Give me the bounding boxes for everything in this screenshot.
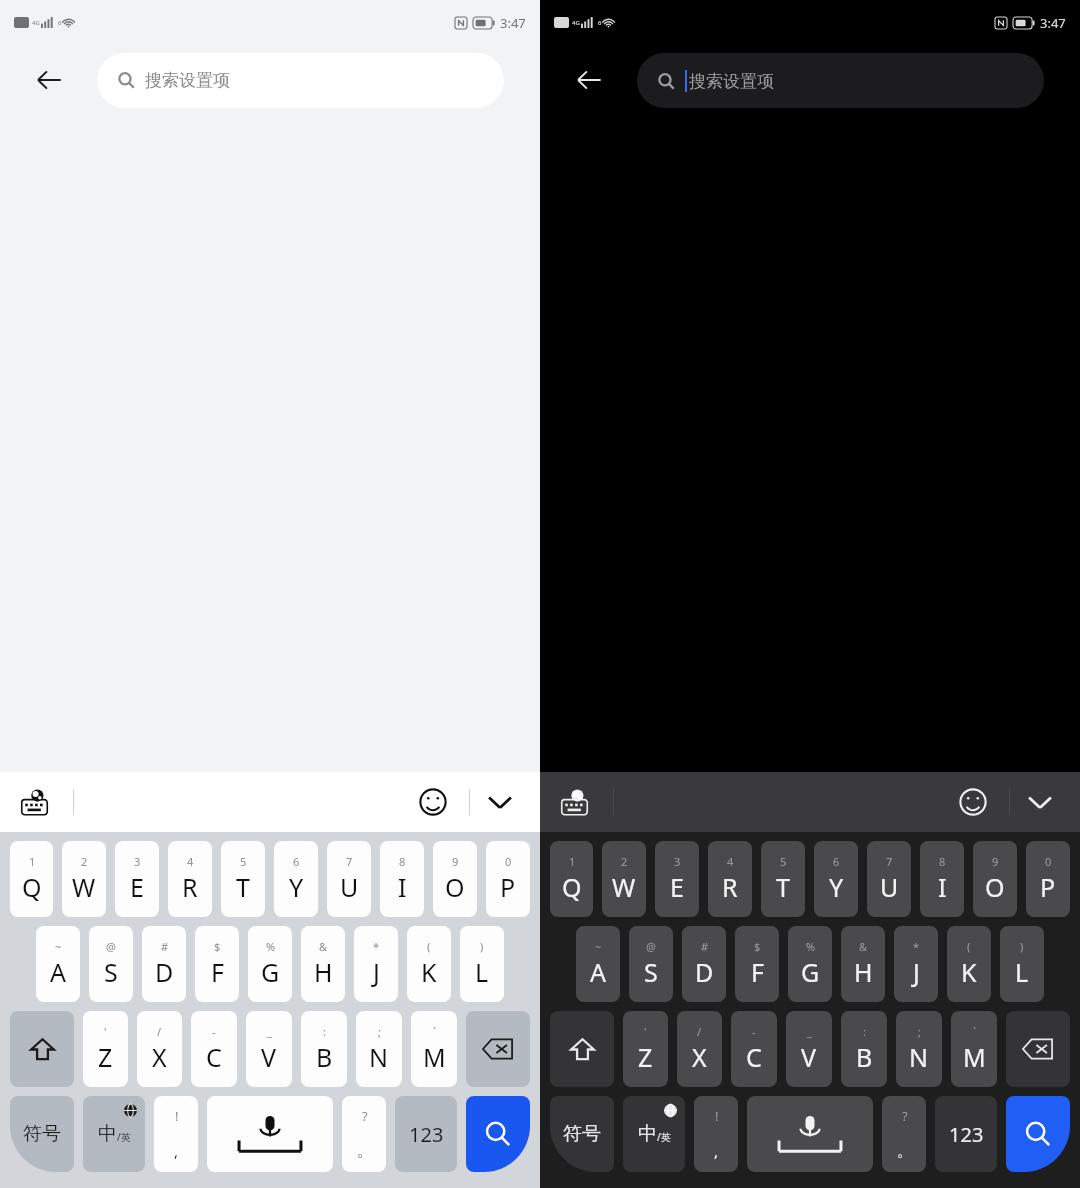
button[interactable]: 1 bbox=[10, 841, 53, 917]
button[interactable]: Space bbox=[207, 1096, 333, 1172]
button[interactable]: 0 bbox=[486, 841, 530, 917]
staticText: D bbox=[155, 955, 174, 989]
button[interactable]: Backspace bbox=[1006, 1011, 1070, 1087]
button[interactable]: Shift bbox=[550, 1011, 614, 1087]
button[interactable]: Back bbox=[540, 45, 637, 115]
button[interactable]: 7 bbox=[867, 841, 911, 917]
button[interactable]: 2 bbox=[602, 841, 646, 917]
button[interactable]: $ bbox=[735, 926, 779, 1002]
staticText: * bbox=[913, 939, 920, 954]
button[interactable]: 2 bbox=[62, 841, 106, 917]
staticText: 3:47 bbox=[500, 14, 526, 32]
button[interactable]: ; bbox=[356, 1011, 402, 1087]
staticText: Y bbox=[829, 870, 844, 904]
button[interactable]: 9 bbox=[433, 841, 477, 917]
button[interactable]: : bbox=[301, 1011, 347, 1087]
staticText: 1 bbox=[569, 854, 576, 869]
button[interactable]: 4 bbox=[708, 841, 752, 917]
button[interactable]: - bbox=[731, 1011, 777, 1087]
button[interactable]: ~ bbox=[36, 926, 80, 1002]
button[interactable]: 3 bbox=[655, 841, 699, 917]
button[interactable]: Search bbox=[1006, 1096, 1070, 1172]
button[interactable]: 3 bbox=[115, 841, 159, 917]
button[interactable]: 9 bbox=[973, 841, 1017, 917]
staticText: 0 bbox=[505, 854, 512, 869]
button[interactable]: 中 bbox=[83, 1096, 145, 1172]
button[interactable]: ? bbox=[342, 1096, 386, 1172]
button[interactable]: ! bbox=[154, 1096, 198, 1172]
staticText: / bbox=[697, 1024, 702, 1039]
button[interactable]: ; bbox=[896, 1011, 942, 1087]
button[interactable]: 123 bbox=[395, 1096, 457, 1172]
button[interactable]: 0 bbox=[1026, 841, 1070, 917]
button[interactable]: @ bbox=[629, 926, 673, 1002]
button[interactable]: 6 bbox=[274, 841, 318, 917]
button[interactable]: 搜索设置项 bbox=[637, 53, 1044, 108]
button[interactable]: 4 bbox=[168, 841, 212, 917]
button[interactable]: Hide keyboard bbox=[478, 780, 522, 824]
button[interactable]: ~ bbox=[576, 926, 620, 1002]
button[interactable]: 5 bbox=[221, 841, 265, 917]
button[interactable]: ( bbox=[947, 926, 991, 1002]
button[interactable]: Switch input language bbox=[552, 780, 596, 824]
button[interactable]: ( bbox=[407, 926, 451, 1002]
button[interactable]: / bbox=[677, 1011, 722, 1087]
button[interactable]: 符号 bbox=[10, 1096, 74, 1172]
button[interactable]: Emoji bbox=[412, 781, 454, 823]
button[interactable]: _ bbox=[786, 1011, 832, 1087]
button[interactable]: % bbox=[788, 926, 832, 1002]
button[interactable]: 8 bbox=[380, 841, 424, 917]
button[interactable]: Emoji bbox=[952, 781, 994, 823]
button[interactable]: ' bbox=[623, 1011, 668, 1087]
button[interactable]: 8 bbox=[920, 841, 964, 917]
button[interactable]: 7 bbox=[327, 841, 371, 917]
button[interactable]: : bbox=[841, 1011, 887, 1087]
button[interactable]: # bbox=[682, 926, 726, 1002]
button[interactable]: / bbox=[137, 1011, 182, 1087]
button[interactable]: 6 bbox=[814, 841, 858, 917]
button[interactable]: Back bbox=[0, 45, 97, 115]
button[interactable]: ) bbox=[460, 926, 504, 1002]
button[interactable]: _ bbox=[246, 1011, 292, 1087]
staticText: ~ bbox=[55, 939, 62, 954]
button[interactable]: Space bbox=[747, 1096, 873, 1172]
staticText: ; bbox=[918, 1024, 921, 1039]
button[interactable]: - bbox=[191, 1011, 237, 1087]
button[interactable]: 1 bbox=[550, 841, 593, 917]
staticText: W bbox=[72, 870, 96, 904]
button[interactable]: $ bbox=[195, 926, 239, 1002]
button[interactable]: Hide keyboard bbox=[1018, 780, 1062, 824]
button[interactable]: ) bbox=[1000, 926, 1044, 1002]
staticText: F bbox=[211, 955, 224, 989]
button[interactable]: # bbox=[142, 926, 186, 1002]
button[interactable]: ? bbox=[882, 1096, 926, 1172]
staticText: /英 bbox=[117, 1130, 131, 1144]
staticText: B bbox=[856, 1040, 873, 1074]
button[interactable]: 5 bbox=[761, 841, 805, 917]
button[interactable]: ` bbox=[411, 1011, 457, 1087]
button[interactable]: Switch input language bbox=[12, 780, 56, 824]
staticText: 6 bbox=[293, 854, 300, 869]
button[interactable]: & bbox=[841, 926, 885, 1002]
button[interactable]: 符号 bbox=[550, 1096, 614, 1172]
staticText: 搜索设置项 bbox=[145, 70, 230, 91]
button[interactable]: ` bbox=[951, 1011, 997, 1087]
staticText: K bbox=[421, 955, 437, 989]
button[interactable]: 中 bbox=[623, 1096, 685, 1172]
staticText: & bbox=[859, 939, 868, 954]
button[interactable]: 123 bbox=[935, 1096, 997, 1172]
button[interactable]: ' bbox=[83, 1011, 128, 1087]
button[interactable]: ! bbox=[694, 1096, 738, 1172]
button[interactable]: % bbox=[248, 926, 292, 1002]
button[interactable]: @ bbox=[89, 926, 133, 1002]
button[interactable]: * bbox=[354, 926, 398, 1002]
staticText: L bbox=[475, 955, 489, 989]
button[interactable]: & bbox=[301, 926, 345, 1002]
button[interactable]: Backspace bbox=[466, 1011, 530, 1087]
button[interactable]: Search bbox=[466, 1096, 530, 1172]
button[interactable]: * bbox=[894, 926, 938, 1002]
button[interactable]: Shift bbox=[10, 1011, 74, 1087]
button[interactable]: 搜索设置项 bbox=[97, 53, 504, 108]
staticText: 3 bbox=[134, 854, 141, 869]
staticText: _ bbox=[267, 1024, 272, 1039]
